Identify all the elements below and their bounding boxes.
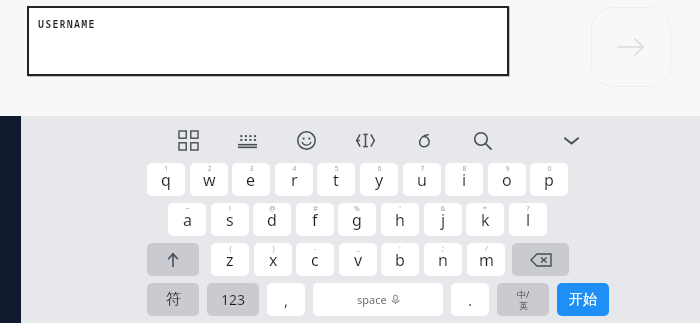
button[interactable]: space <box>313 283 443 316</box>
staticText: ! <box>229 204 231 214</box>
staticText: t <box>333 169 339 191</box>
button[interactable]: Text <box>350 125 380 155</box>
staticText: o <box>502 169 512 191</box>
staticText: i <box>462 169 467 191</box>
button[interactable]: ; <box>424 243 462 276</box>
button[interactable]: Apps <box>173 125 203 155</box>
button[interactable]: ~ <box>168 203 206 236</box>
button[interactable]: Backspace <box>512 243 569 276</box>
staticText: q <box>161 169 171 191</box>
staticText: y <box>375 169 384 191</box>
button[interactable]: 0 <box>530 163 568 196</box>
staticText: 2 <box>207 164 212 174</box>
staticText: * <box>483 204 487 214</box>
staticText: , <box>284 290 289 310</box>
button[interactable]: , <box>267 283 305 316</box>
button[interactable]: - <box>296 243 334 276</box>
staticText: m <box>479 249 494 271</box>
staticText: 4 <box>292 164 297 174</box>
button[interactable]: 符 <box>147 283 199 316</box>
staticText: 6 <box>377 164 382 174</box>
button[interactable]: _ <box>339 243 377 276</box>
button[interactable]: ? <box>509 203 547 236</box>
button[interactable]: ( <box>211 243 249 276</box>
staticText: p <box>544 169 554 191</box>
staticText: ' <box>399 204 401 214</box>
staticText: USERNAME <box>38 17 96 31</box>
staticText: g <box>352 209 362 231</box>
staticText: j <box>441 209 446 231</box>
button[interactable]: : <box>381 243 419 276</box>
staticText: z <box>226 249 234 271</box>
button[interactable]: Emoji <box>291 125 321 155</box>
staticText: u <box>417 169 427 191</box>
button[interactable]: Clipboard <box>408 125 438 155</box>
staticText: s <box>226 209 234 231</box>
button[interactable]: Next <box>591 7 671 87</box>
staticText: f <box>312 209 318 231</box>
staticText: space <box>357 292 387 307</box>
button[interactable]: % <box>338 203 376 236</box>
staticText: n <box>438 249 448 271</box>
staticText: 0 <box>547 164 552 174</box>
button[interactable]: Shift <box>147 243 199 276</box>
button[interactable]: . <box>451 283 489 316</box>
staticText: ~ <box>185 204 190 214</box>
staticText: ? <box>526 204 530 214</box>
button[interactable]: USERNAME <box>27 6 509 76</box>
button[interactable]: 2 <box>190 163 228 196</box>
staticText: x <box>269 249 278 271</box>
staticText: c <box>311 249 319 271</box>
button[interactable]: & <box>424 203 462 236</box>
button[interactable]: Search <box>467 125 497 155</box>
staticText: 123 <box>221 290 246 309</box>
button[interactable]: ! <box>211 203 249 236</box>
staticText: l <box>526 209 531 231</box>
button[interactable]: 123 <box>207 283 259 316</box>
staticText: 开始 <box>569 291 597 309</box>
staticText: # <box>313 204 318 214</box>
staticText: . <box>468 290 473 310</box>
button[interactable]: * <box>466 203 504 236</box>
staticText: 5 <box>334 164 339 174</box>
staticText: v <box>354 249 363 271</box>
button[interactable]: 4 <box>275 163 313 196</box>
button[interactable]: 开始 <box>557 283 609 316</box>
staticText: 9 <box>505 164 510 174</box>
button[interactable]: 9 <box>488 163 526 196</box>
button[interactable]: 5 <box>317 163 355 196</box>
staticText: : <box>399 244 401 254</box>
button[interactable]: # <box>296 203 334 236</box>
staticText: h <box>395 209 405 231</box>
button[interactable]: 8 <box>445 163 483 196</box>
staticText: d <box>267 209 277 231</box>
staticText: a <box>183 209 192 231</box>
staticText: ; <box>442 244 444 254</box>
staticText: k <box>481 209 490 231</box>
staticText: & <box>440 204 446 214</box>
button[interactable]: 6 <box>360 163 398 196</box>
button[interactable]: ' <box>381 203 419 236</box>
button[interactable]: @ <box>253 203 291 236</box>
button[interactable]: Hide keyboard <box>556 125 586 155</box>
button[interactable]: ) <box>254 243 292 276</box>
staticText: % <box>354 204 360 214</box>
button[interactable]: 1 <box>147 163 185 196</box>
button[interactable]: Keyboard <box>232 125 262 155</box>
staticText: r <box>291 169 298 191</box>
staticText: / <box>485 244 488 254</box>
staticText: w <box>203 169 216 191</box>
staticText: 7 <box>420 164 425 174</box>
staticText: b <box>395 249 405 271</box>
button[interactable]: / <box>467 243 505 276</box>
staticText: 符 <box>166 290 181 309</box>
staticText: 3 <box>249 164 254 174</box>
staticText: ( <box>229 244 232 254</box>
button[interactable]: 7 <box>403 163 441 196</box>
staticText: ) <box>272 244 275 254</box>
button[interactable]: 中/ <box>497 283 549 316</box>
staticText: _ <box>356 244 360 254</box>
staticText: 1 <box>164 164 169 174</box>
staticText: - <box>314 244 317 254</box>
button[interactable]: 3 <box>232 163 270 196</box>
